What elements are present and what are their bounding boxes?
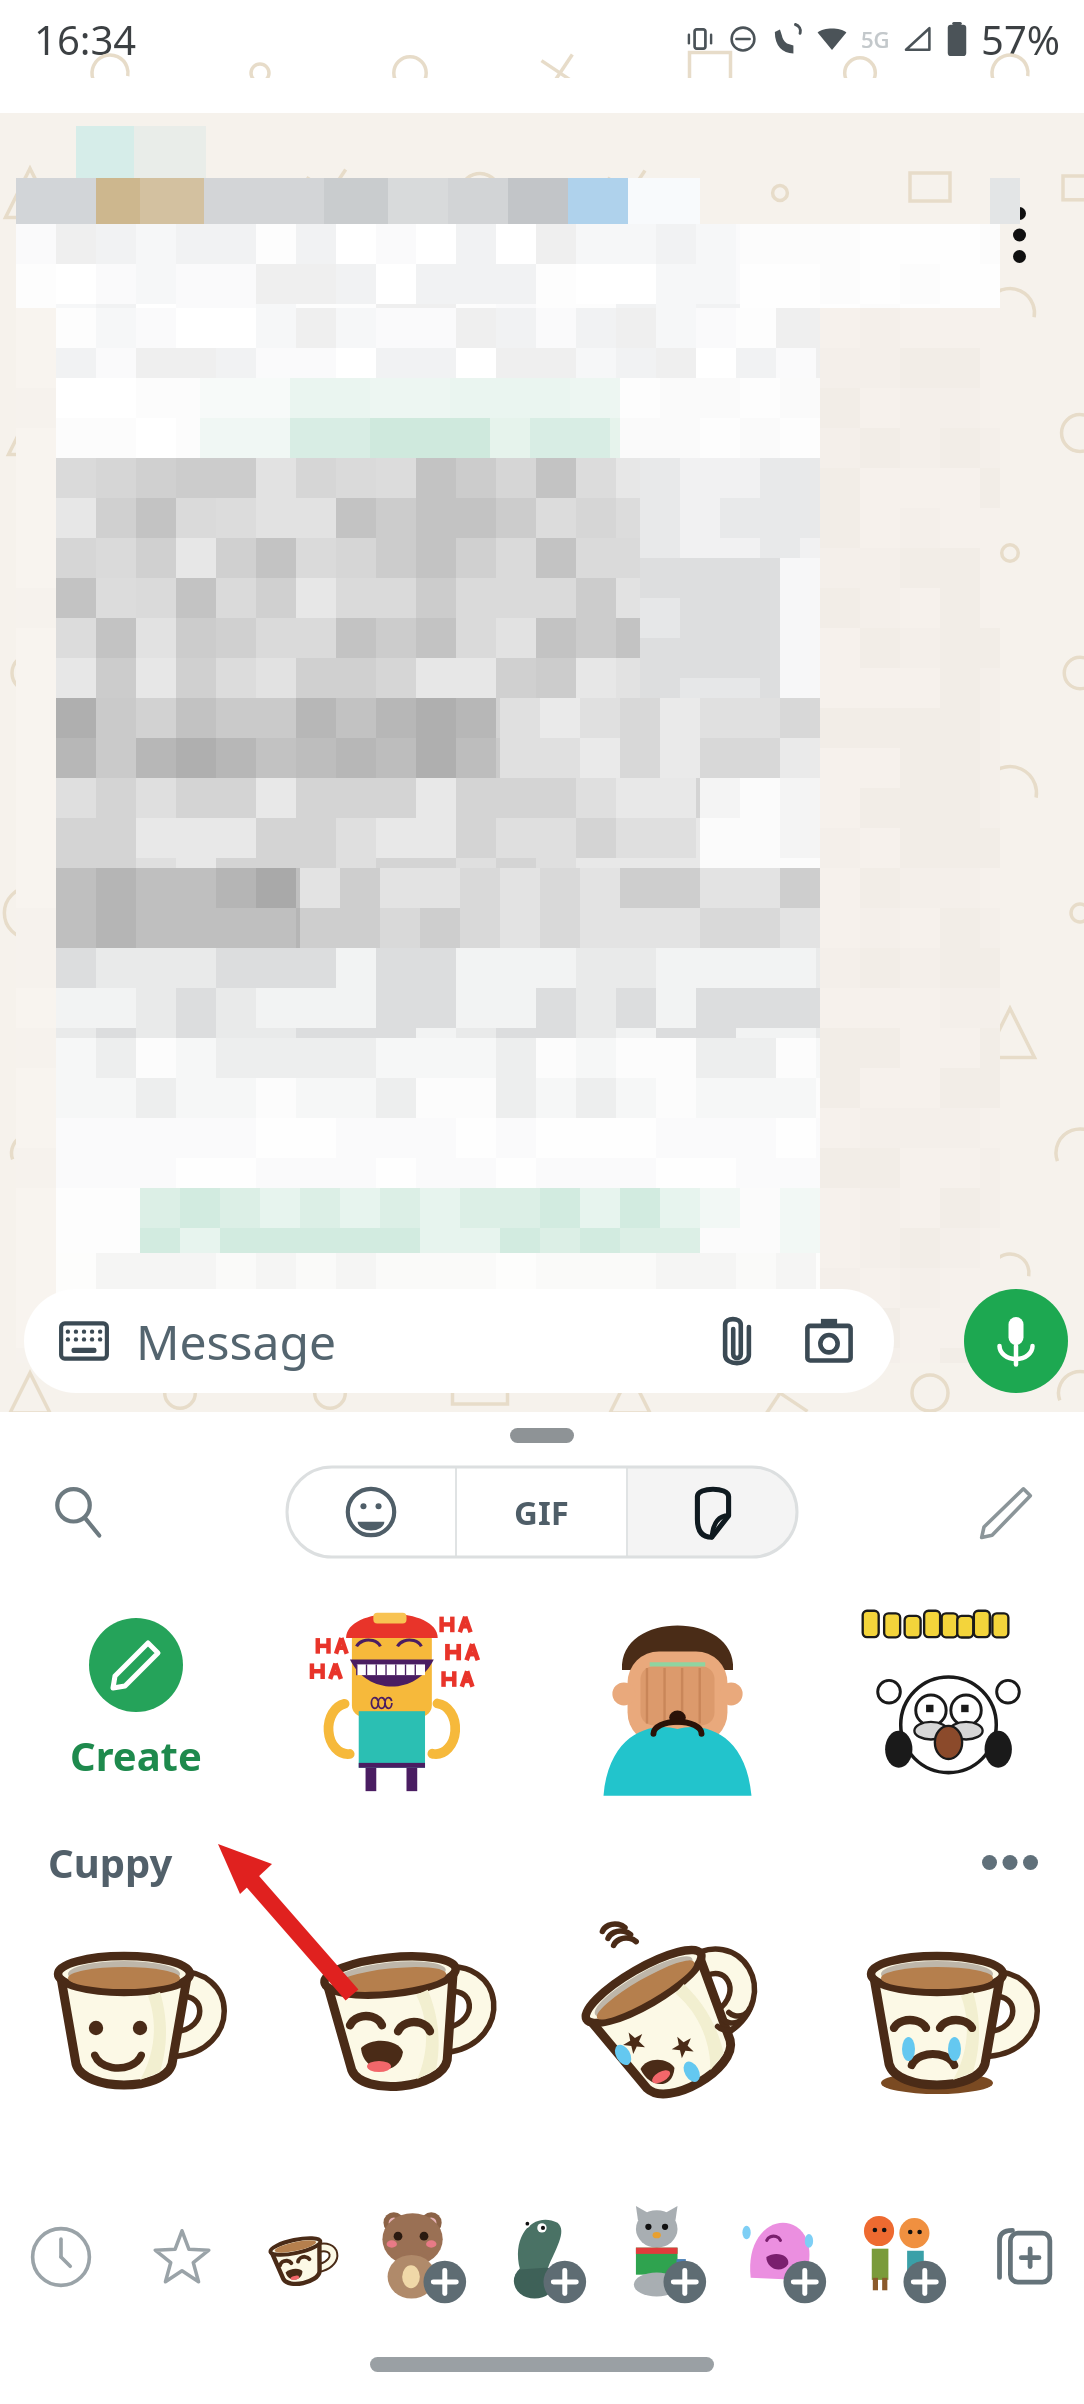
button[interactable]: Keyboard <box>24 1289 894 1393</box>
button[interactable]: Stickers <box>628 1467 797 1557</box>
button[interactable]: Laughing cup sticker <box>271 1907 542 2117</box>
button[interactable]: Excited cup sticker <box>542 1907 813 2117</box>
button[interactable]: Keyboard <box>58 1315 110 1367</box>
button[interactable]: Camera <box>798 1310 860 1372</box>
button[interactable]: Facepalm sticker <box>542 1592 813 1807</box>
button[interactable]: Sticker pack 5 <box>844 2189 964 2324</box>
button[interactable]: Sticker pack 4 <box>724 2189 844 2324</box>
button[interactable]: Edit <box>966 1472 1046 1552</box>
button[interactable]: Sticker pack 1 <box>363 2189 484 2324</box>
staticText: Create <box>70 1728 202 1782</box>
button[interactable]: Sticker pack 3 <box>604 2189 724 2324</box>
button[interactable]: Add stickers <box>964 2189 1084 2324</box>
button[interactable]: Emoji <box>287 1467 455 1557</box>
button[interactable]: Attach <box>706 1310 768 1372</box>
staticText: GIF <box>514 1490 569 1535</box>
button[interactable]: Cuppy pack <box>242 2189 363 2324</box>
staticText: 16:34 <box>34 12 137 66</box>
button[interactable]: More options <box>980 196 1058 274</box>
button[interactable]: Sticker pack 2 <box>484 2189 604 2324</box>
staticText: Cuppy <box>48 1835 173 1889</box>
button[interactable]: Smiling cup sticker <box>0 1907 271 2117</box>
staticText: Message <box>136 1309 337 1374</box>
button[interactable]: Recent stickers <box>0 2189 121 2324</box>
button[interactable]: Create <box>0 1592 271 1807</box>
button[interactable]: Voice message <box>964 1289 1068 1393</box>
button[interactable]: GIF <box>457 1467 626 1557</box>
button[interactable]: Pack options <box>972 1824 1048 1900</box>
staticText: 57% <box>981 12 1060 66</box>
button[interactable]: Amazing sticker <box>813 1592 1084 1807</box>
button[interactable]: Crying cup sticker <box>813 1907 1084 2117</box>
button[interactable]: Haha sticker <box>271 1592 542 1807</box>
button[interactable]: Favourite stickers <box>121 2189 242 2324</box>
staticText: 5G <box>861 24 890 54</box>
button[interactable]: Cuppy <box>0 1817 1084 1907</box>
button[interactable]: Search stickers <box>38 1472 118 1552</box>
